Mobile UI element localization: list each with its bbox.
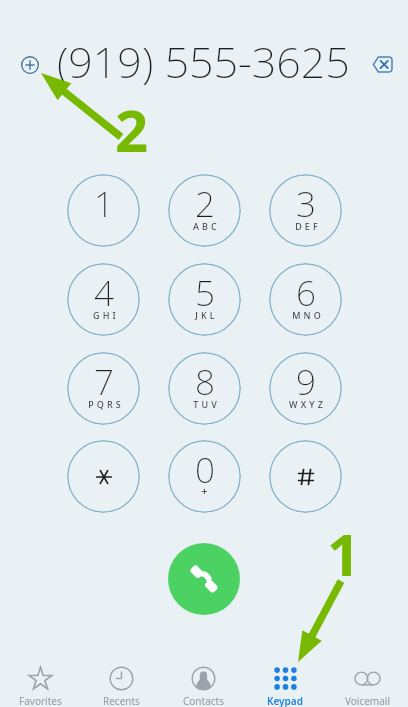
button[interactable]: Recents: [81, 645, 162, 707]
button[interactable]: 1: [67, 174, 140, 247]
staticText: TUV: [193, 398, 220, 410]
button[interactable]: 2: [168, 174, 241, 247]
staticText: DEF: [295, 220, 321, 232]
button[interactable]: Favorites: [0, 645, 81, 707]
staticText: 6: [296, 269, 316, 317]
button[interactable]: 9: [269, 352, 342, 425]
button[interactable]: Call: [168, 543, 240, 615]
staticText: 8: [195, 358, 215, 406]
button[interactable]: [67, 440, 140, 513]
staticText: 9: [296, 358, 316, 406]
staticText: 1: [327, 514, 361, 593]
button[interactable]: Add contact: [13, 48, 46, 81]
staticText: PQRS: [88, 398, 124, 410]
staticText: 3: [296, 180, 316, 228]
button[interactable]: 7: [67, 352, 140, 425]
staticText: Favorites: [19, 694, 62, 707]
button[interactable]: 5: [168, 263, 241, 336]
staticText: +: [201, 483, 208, 498]
staticText: 4: [94, 269, 114, 317]
staticText: (919) 555-3625: [57, 32, 350, 91]
staticText: Recents: [103, 694, 140, 707]
staticText: 2: [115, 90, 149, 169]
staticText: Keypad: [267, 694, 303, 707]
button[interactable]: 0: [168, 440, 241, 513]
staticText: 2: [195, 180, 215, 228]
button[interactable]: 4: [67, 263, 140, 336]
button[interactable]: 6: [269, 263, 342, 336]
staticText: MNO: [292, 309, 324, 321]
staticText: 0: [195, 446, 215, 494]
button[interactable]: [269, 440, 342, 513]
staticText: GHI: [93, 309, 119, 321]
button[interactable]: 3: [269, 174, 342, 247]
button[interactable]: Contacts: [162, 645, 244, 707]
staticText: WXYZ: [289, 398, 326, 410]
staticText: 5: [195, 269, 215, 317]
staticText: 1: [94, 180, 114, 228]
staticText: Contacts: [183, 694, 224, 707]
button[interactable]: Keypad: [244, 645, 326, 707]
button[interactable]: 8: [168, 352, 241, 425]
staticText: Voicemail: [345, 694, 390, 707]
staticText: 7: [94, 358, 114, 406]
button[interactable]: Backspace: [366, 48, 398, 80]
button[interactable]: Voicemail: [326, 645, 408, 707]
staticText: ABC: [193, 220, 220, 232]
staticText: JKL: [195, 309, 218, 321]
